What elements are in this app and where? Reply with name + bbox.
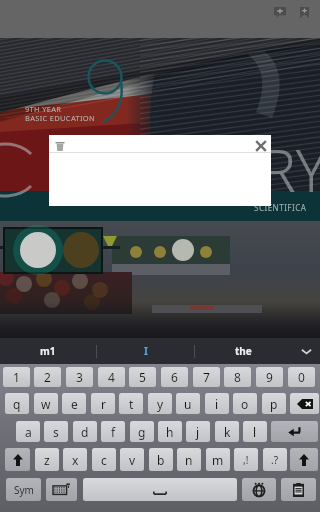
button[interactable]: e [62,393,86,414]
staticText: 9TH YEAR [25,104,62,114]
staticText: o [241,396,249,412]
button[interactable]: f [101,421,125,442]
staticText: e [71,396,78,412]
button[interactable]: ,! [234,448,258,471]
staticText: j [196,424,200,440]
staticText: v [129,452,136,468]
staticText: 5 [139,369,146,385]
button[interactable]: Enter [271,421,318,442]
button[interactable]: Change language [242,478,276,501]
staticText: 0 [298,369,305,385]
staticText: h [166,424,174,440]
button[interactable]: .? [263,448,287,471]
button[interactable]: z [35,448,59,471]
staticText: l [253,424,257,440]
staticText: 1 [13,369,20,385]
staticText: m1 [40,344,56,358]
staticText: BASIC EDUCATION [25,113,95,123]
staticText: k [224,424,231,440]
button[interactable]: m [206,448,230,471]
button[interactable]: 3 [66,367,93,387]
button[interactable]: 9 [256,367,283,387]
button[interactable]: 2 [34,367,61,387]
button[interactable]: s [44,421,68,442]
staticText: a [25,424,32,440]
staticText: 2 [44,369,51,385]
staticText: b [157,452,165,468]
button[interactable]: t [119,393,143,414]
staticText: c [101,452,107,468]
button[interactable]: 0 [288,367,315,387]
staticText: SCIENTIFICA [254,202,307,213]
staticText: z [44,452,50,468]
staticText: 3 [76,369,83,385]
button[interactable]: a [16,421,40,442]
button[interactable]: Keyboard settings [46,478,77,501]
staticText: i [215,396,219,412]
button[interactable]: Clipboard [281,478,316,501]
button[interactable]: Add note [268,0,292,24]
button[interactable]: v [120,448,144,471]
button[interactable]: m1 [0,338,96,364]
button[interactable]: y [148,393,172,414]
button[interactable]: Shift [290,448,318,471]
staticText: w [41,396,51,412]
button[interactable]: b [149,448,173,471]
staticText: I [144,344,148,358]
staticText: 6 [171,369,178,385]
button[interactable]: 8 [224,367,251,387]
button[interactable]: c [92,448,116,471]
staticText: Sym [14,483,34,497]
button[interactable]: Sym [6,478,41,501]
button[interactable]: I [97,338,194,364]
staticText: r [101,396,106,412]
staticText: g [138,424,146,440]
staticText: p [270,396,278,412]
staticText: 7 [203,369,210,385]
staticText: q [13,396,21,412]
button[interactable]: More suggestions [292,338,320,364]
button[interactable]: k [215,421,239,442]
button[interactable]: 6 [161,367,188,387]
button[interactable]: 4 [98,367,125,387]
button[interactable]: l [243,421,267,442]
staticText: f [111,424,116,440]
staticText: u [184,396,192,412]
button[interactable]: u [176,393,200,414]
button[interactable]: h [158,421,182,442]
button[interactable]: r [91,393,115,414]
button[interactable]: Delete note [52,138,68,154]
staticText: m [212,452,224,468]
staticText: d [81,424,89,440]
button[interactable]: Add bookmark [292,0,316,24]
button[interactable]: Backspace [290,393,319,414]
button[interactable]: n [177,448,201,471]
button[interactable]: Shift [5,448,30,471]
button[interactable]: q [5,393,29,414]
staticText: .? [271,453,279,467]
staticText: s [53,424,59,440]
button[interactable]: Space [83,478,237,501]
button[interactable]: 7 [193,367,220,387]
staticText: 4 [108,369,115,385]
staticText: RY [261,130,320,209]
button[interactable]: j [186,421,210,442]
staticText: ,! [243,453,249,467]
staticText: x [72,452,79,468]
staticText: the [235,344,252,358]
button[interactable]: o [233,393,257,414]
staticText: y [157,396,164,412]
button[interactable]: Close [253,138,269,154]
button[interactable]: d [73,421,97,442]
button[interactable]: w [34,393,58,414]
button[interactable]: 1 [3,367,30,387]
button[interactable]: i [205,393,229,414]
button[interactable]: g [130,421,154,442]
staticText: 8 [234,369,241,385]
button[interactable]: 5 [129,367,156,387]
staticText: t [129,396,134,412]
button[interactable]: p [262,393,286,414]
button[interactable]: x [63,448,87,471]
button[interactable]: the [195,338,292,364]
staticText: n [185,452,193,468]
